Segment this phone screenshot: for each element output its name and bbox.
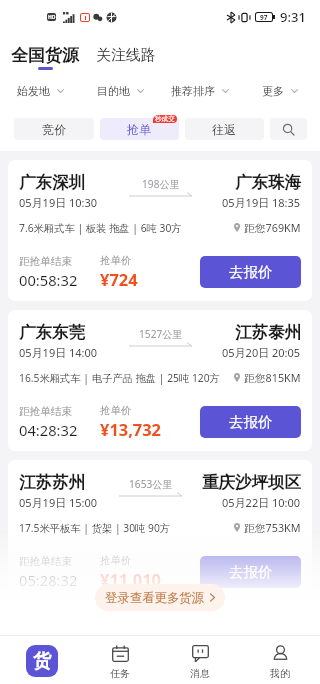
staticText: 更多 <box>262 84 284 98</box>
staticText: 重庆沙坪坝区 <box>202 472 301 493</box>
staticText: 推荐排序 <box>171 84 215 98</box>
button[interactable]: 始发地 <box>0 76 80 106</box>
staticText: 05月20日 20:05 <box>222 345 301 360</box>
staticText: 江苏泰州 <box>235 322 301 343</box>
staticText: 05月19日 15:00 <box>19 495 98 510</box>
staticText: 9:31 <box>280 8 306 26</box>
staticText: 目的地 <box>97 84 130 98</box>
staticText: 05月22日 10:00 <box>222 495 301 510</box>
button[interactable]: 广东东莞 <box>8 310 312 451</box>
staticText: 距抢单结束 <box>19 255 72 268</box>
staticText: 05月19日 14:00 <box>19 345 98 360</box>
button[interactable]: 关注线路 <box>94 45 158 66</box>
button[interactable]: 登录查看更多货源 <box>95 584 225 611</box>
button[interactable]: 江苏苏州 <box>8 460 312 601</box>
button[interactable]: 货源 <box>0 636 80 684</box>
staticText: 198公里 <box>142 177 180 191</box>
staticText: 距您769KM <box>244 220 301 235</box>
button[interactable]: 往返 <box>185 118 264 140</box>
staticText: 关注线路 <box>96 46 156 65</box>
button[interactable]: 任务 <box>80 636 160 684</box>
staticText: 往返 <box>212 122 237 137</box>
staticText: 抢单价 <box>100 554 132 567</box>
staticText: 05:28:32 <box>19 570 78 590</box>
staticText: 05月19日 18:35 <box>222 195 301 210</box>
button[interactable]: 推荐排序 <box>160 76 240 106</box>
staticText: 17.5米平板车 | 货架 | 30吨 90方 <box>19 521 171 535</box>
staticText: 广东深圳 <box>19 172 85 193</box>
button[interactable]: 广东深圳 <box>8 160 312 301</box>
staticText: 16.5米厢式车 | 电子产品 拖盘 | 25吨 120方 <box>19 371 220 385</box>
staticText: 秒成交 <box>155 115 175 123</box>
button[interactable]: 我的 <box>240 636 320 684</box>
staticText: 抢单 <box>127 122 152 137</box>
staticText: ¥724 <box>100 268 138 290</box>
button[interactable]: 去报价 <box>200 556 301 588</box>
staticText: HD <box>48 14 56 21</box>
staticText: 距抢单结束 <box>19 405 72 418</box>
staticText: 抢单价 <box>100 404 132 417</box>
button[interactable]: 消息 <box>160 636 240 684</box>
staticText: 1653公里 <box>129 477 173 491</box>
staticText: ¥11,010 <box>100 568 161 590</box>
staticText: 距抢单结束 <box>19 555 72 568</box>
staticText: 全国货源 <box>11 45 79 66</box>
staticText: 江苏苏州 <box>19 472 85 493</box>
staticText: 05月19日 10:30 <box>19 195 98 210</box>
button[interactable]: 目的地 <box>80 76 160 106</box>
button[interactable]: 全国货源 <box>9 45 81 70</box>
staticText: 04:28:32 <box>19 420 78 440</box>
staticText: 97 <box>260 13 268 21</box>
button[interactable]: 更多 <box>240 76 320 106</box>
staticText: 始发地 <box>17 84 50 98</box>
staticText: 广东珠海 <box>235 172 301 193</box>
button[interactable]: 竞价 <box>14 118 94 140</box>
staticText: 货 <box>33 650 51 673</box>
button[interactable]: 去报价 <box>200 256 301 288</box>
staticText: 1527公里 <box>139 327 183 341</box>
staticText: 距您815KM <box>244 370 301 385</box>
staticText: 抢单价 <box>100 254 132 267</box>
staticText: 7.6米厢式车 | 板装 拖盘 | 6吨 30方 <box>19 221 182 235</box>
button[interactable]: 搜索 <box>270 118 307 140</box>
staticText: 消息 <box>190 667 210 680</box>
staticText: 我的 <box>270 667 290 680</box>
button[interactable]: 去报价 <box>200 406 301 438</box>
staticText: 距您753KM <box>244 520 301 535</box>
staticText: 登录查看更多货源 <box>105 590 205 606</box>
staticText: 竞价 <box>42 122 67 137</box>
staticText: 广东东莞 <box>19 322 85 343</box>
staticText: 去报价 <box>229 413 273 431</box>
staticText: 00:58:32 <box>19 270 78 290</box>
staticText: ¥13,732 <box>100 418 161 440</box>
staticText: 去报价 <box>229 563 273 581</box>
staticText: 去报价 <box>229 263 273 281</box>
button[interactable]: 抢单 <box>100 118 179 140</box>
staticText: 任务 <box>110 667 130 680</box>
